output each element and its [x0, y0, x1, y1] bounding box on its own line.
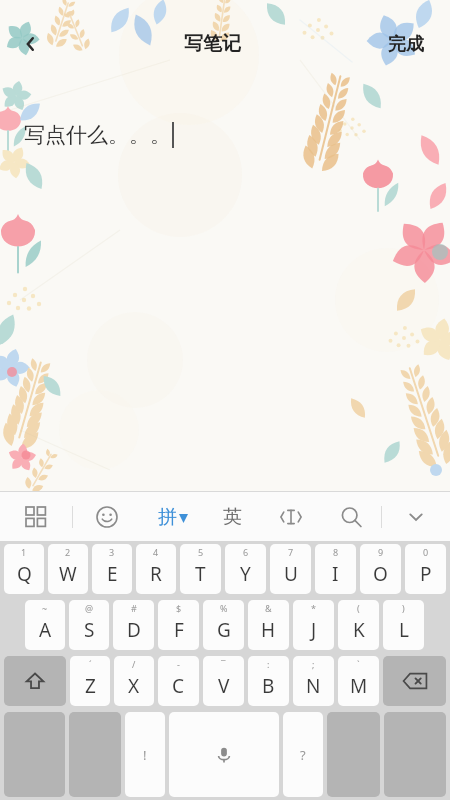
staticText: :: [267, 658, 270, 670]
button[interactable]: ): [383, 600, 424, 650]
button[interactable]: Search: [321, 492, 381, 541]
staticText: X: [128, 673, 140, 699]
staticText: S: [84, 617, 95, 643]
other: Voice input: [215, 746, 233, 764]
button[interactable]: /: [114, 656, 154, 706]
button[interactable]: -: [158, 656, 199, 706]
button[interactable]: Hide keyboard: [382, 492, 450, 541]
button[interactable]: 英: [203, 492, 261, 541]
button[interactable]: !: [125, 712, 165, 797]
staticText: ´: [89, 658, 92, 670]
button[interactable]: 拼: [141, 492, 203, 541]
staticText: N: [306, 673, 321, 699]
button[interactable]: #: [113, 600, 154, 650]
button[interactable]: 1: [4, 544, 44, 594]
staticText: -: [177, 658, 180, 670]
staticText: M: [350, 673, 368, 699]
button[interactable]: :: [248, 656, 289, 706]
staticText: F: [174, 617, 184, 643]
staticText: C: [172, 673, 185, 699]
staticText: &: [265, 602, 272, 614]
staticText: %: [220, 602, 228, 614]
staticText: /: [132, 658, 136, 670]
staticText: 9: [378, 546, 384, 558]
staticText: @: [85, 602, 94, 614]
staticText: 2: [65, 546, 71, 558]
staticText: 4: [153, 546, 159, 558]
staticText: 0: [423, 546, 429, 558]
staticText: O: [373, 561, 388, 587]
staticText: Z: [85, 673, 96, 699]
staticText: I: [332, 561, 339, 587]
staticText: 完成: [388, 33, 424, 56]
button[interactable]: ~: [25, 600, 65, 650]
button[interactable]: 6: [225, 544, 266, 594]
other: Shift: [24, 670, 46, 692]
staticText: U: [284, 561, 298, 587]
button[interactable]: $: [158, 600, 199, 650]
staticText: 1: [21, 546, 27, 558]
button[interactable]: &: [248, 600, 289, 650]
staticText: 写笔记: [184, 32, 241, 56]
button[interactable]: 3: [92, 544, 132, 594]
staticText: V: [218, 673, 230, 699]
button[interactable]: Back: [0, 16, 62, 72]
button[interactable]: `: [338, 656, 379, 706]
staticText: Q: [17, 561, 32, 587]
staticText: *: [311, 602, 316, 614]
other: Backspace: [402, 668, 428, 694]
staticText: !: [143, 746, 147, 764]
staticText: `: [357, 658, 360, 670]
staticText: 英: [223, 505, 242, 529]
button[interactable]: ;: [293, 656, 334, 706]
button[interactable]: 5: [180, 544, 221, 594]
staticText: 3: [109, 546, 115, 558]
staticText: 6: [243, 546, 249, 558]
button[interactable]: 2: [48, 544, 88, 594]
button[interactable]: (: [338, 600, 379, 650]
staticText: R: [150, 561, 162, 587]
staticText: 拼: [158, 505, 177, 529]
button[interactable]: *: [293, 600, 334, 650]
staticText: ¯: [221, 658, 226, 670]
staticText: ?: [300, 746, 306, 764]
button[interactable]: %: [203, 600, 244, 650]
button[interactable]: Shift: [4, 656, 66, 706]
button[interactable]: 9: [360, 544, 401, 594]
staticText: ): [402, 602, 405, 614]
button[interactable]: ?: [283, 712, 323, 797]
staticText: E: [107, 561, 118, 587]
staticText: #: [131, 602, 137, 614]
staticText: G: [217, 617, 231, 643]
button[interactable]: 4: [136, 544, 176, 594]
staticText: 写点什么。。。: [24, 122, 171, 148]
staticText: A: [39, 617, 52, 643]
staticText: 5: [198, 546, 204, 558]
button[interactable]: ´: [70, 656, 110, 706]
staticText: Y: [240, 561, 251, 587]
staticText: L: [399, 617, 409, 643]
button[interactable]: ¯: [203, 656, 244, 706]
button[interactable]: 8: [315, 544, 356, 594]
button[interactable]: 7: [270, 544, 311, 594]
staticText: H: [261, 617, 276, 643]
staticText: W: [59, 561, 77, 587]
button[interactable]: 完成: [362, 16, 450, 72]
button[interactable]: 0: [405, 544, 446, 594]
staticText: P: [420, 561, 432, 587]
staticText: J: [311, 617, 317, 643]
staticText: ~: [42, 602, 48, 614]
staticText: 7: [288, 546, 294, 558]
staticText: D: [127, 617, 141, 643]
staticText: $: [176, 602, 182, 614]
button[interactable]: Backspace: [383, 656, 446, 706]
button[interactable]: @: [69, 600, 109, 650]
button[interactable]: Keyboard layouts: [0, 492, 72, 541]
button[interactable]: Move cursor: [261, 492, 321, 541]
button[interactable]: Emoji: [73, 492, 141, 541]
button[interactable]: Voice input: [169, 712, 279, 797]
